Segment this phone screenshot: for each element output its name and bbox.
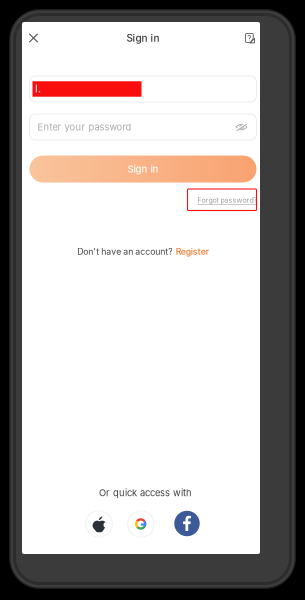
staticText: Enter your password [37, 121, 131, 133]
button[interactable]: Forgot password? [187, 189, 256, 210]
button[interactable]: Sign in [29, 155, 256, 182]
staticText: Don't have an account? [77, 246, 172, 257]
staticText: Forgot password? [197, 196, 257, 204]
staticText: Sign in [127, 163, 158, 175]
staticText: l. [35, 82, 41, 95]
staticText: Register [176, 246, 209, 257]
button[interactable]: Continue with Google [127, 511, 154, 537]
button[interactable]: Close [20, 24, 46, 52]
button[interactable]: Help [237, 24, 263, 52]
staticText: Sign in [126, 32, 159, 44]
button[interactable]: Register [176, 246, 209, 257]
button[interactable]: Continue with Facebook [174, 511, 200, 536]
staticText: Or quick access with [99, 487, 192, 498]
button[interactable]: Continue with Apple [86, 511, 112, 537]
